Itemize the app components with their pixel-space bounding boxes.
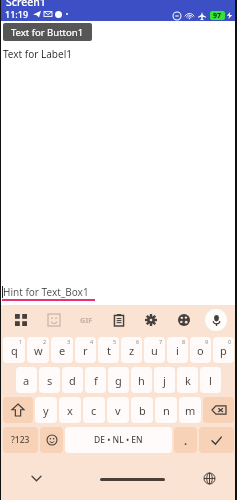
button[interactable]: t [98,337,119,363]
button[interactable]: g [108,367,129,393]
staticText: t [107,343,111,358]
button[interactable]: Shift [3,397,33,423]
button[interactable]: r [75,337,96,363]
staticText: q [11,343,18,358]
button[interactable]: y [35,397,57,423]
staticText: y [43,403,49,418]
button[interactable]: j [154,367,175,393]
staticText: Text for Button1 [11,26,84,39]
staticText: a [23,373,30,388]
button[interactable]: a [16,367,37,393]
button[interactable]: Apps [10,309,32,331]
staticText: DE • NL • EN [94,434,143,446]
staticText: k [185,373,191,388]
button[interactable]: e [51,337,73,363]
button[interactable]: u [144,337,165,363]
button[interactable]: z [121,337,142,363]
button[interactable]: Hide keyboard [28,470,44,486]
button[interactable]: v [107,397,129,423]
staticText: l [209,373,212,388]
staticText: w [34,343,43,358]
staticText: 6 [136,338,140,345]
button[interactable]: s [39,367,60,393]
button[interactable]: f [85,367,106,393]
button[interactable]: Change language [201,470,217,486]
button[interactable]: c [83,397,105,423]
button[interactable]: n [155,397,177,423]
staticText: m [185,403,196,418]
staticText: 11:19 [5,8,29,20]
staticText: f [94,373,98,388]
button[interactable]: Clipboard [108,309,130,331]
staticText: 8 [182,338,186,345]
staticText: 0 [228,338,232,345]
staticText: 3 [67,338,71,345]
staticText: Text for Label1 [3,47,72,61]
button[interactable]: Enter [199,427,234,453]
staticText: 4 [90,338,94,345]
staticText: GIF [80,315,93,325]
staticText: x [67,403,73,418]
staticText: z [129,343,135,358]
staticText: u [151,343,158,358]
button[interactable]: Stickers [43,309,65,331]
button[interactable]: ?123 [3,427,38,453]
button[interactable]: o [190,337,211,363]
staticText: c [91,403,97,418]
staticText: g [115,373,122,388]
button[interactable]: k [177,367,198,393]
staticText: n [163,403,170,418]
button[interactable]: d [62,367,83,393]
button[interactable]: p [213,337,234,363]
staticText: 5 [113,338,117,345]
staticText: d [69,373,76,388]
staticText: 7 [159,338,163,345]
staticText: 1 [19,338,23,345]
button[interactable]: x [59,397,81,423]
staticText: j [163,373,166,388]
staticText: Hint for Text_Box1 [3,285,89,299]
staticText: i [176,343,179,358]
staticText: e [59,343,66,358]
button[interactable]: . [174,427,197,453]
button[interactable]: w [27,337,49,363]
staticText: v [115,403,121,418]
button[interactable]: l [200,367,221,393]
staticText: . [184,433,188,448]
button[interactable]: Emoji [40,427,63,453]
staticText: o [197,343,204,358]
button[interactable]: m [179,397,201,423]
staticText: 9 [205,338,209,345]
staticText: 2 [43,338,47,345]
staticText: b [139,403,146,418]
button[interactable]: q [3,337,25,363]
staticText: p [220,343,227,358]
button[interactable]: i [167,337,188,363]
staticText: Screen1 [6,0,46,9]
staticText: s [47,373,53,388]
button[interactable]: GIF [75,309,97,331]
staticText: h [138,373,145,388]
staticText: r [83,343,88,358]
button[interactable]: Backspace [203,397,234,423]
button[interactable]: Voice input [205,309,227,331]
button[interactable]: Text for Button1 [3,23,92,41]
button[interactable]: Theme [173,309,195,331]
staticText: ?123 [11,434,30,446]
button[interactable]: DE • NL • EN [65,427,172,453]
button[interactable]: b [131,397,153,423]
button[interactable]: Settings [140,309,162,331]
button[interactable]: h [131,367,152,393]
staticText: 97 [213,11,222,20]
